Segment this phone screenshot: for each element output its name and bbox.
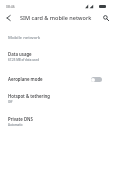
staticText: 67.25 MB of data used (8, 58, 39, 62)
staticText: Aeroplane mode (8, 76, 91, 82)
staticText: Automatic (8, 123, 23, 127)
staticText: Hotspot & tethering (8, 93, 51, 99)
staticText: 08:46 (6, 4, 15, 9)
staticText: Off (8, 100, 13, 104)
button[interactable]: Aeroplane mode (0, 69, 115, 89)
staticText: Mobile network (8, 34, 41, 40)
staticText: SIM card & mobile network (20, 14, 92, 21)
button[interactable]: Private DNS (0, 111, 115, 132)
button[interactable]: Data usage (0, 46, 115, 67)
staticText: Private DNS (8, 116, 33, 122)
button[interactable]: Back (2, 11, 15, 24)
button[interactable]: Search (99, 11, 112, 24)
button[interactable]: Hotspot & tethering (0, 88, 115, 109)
staticText: Data usage (8, 51, 32, 57)
